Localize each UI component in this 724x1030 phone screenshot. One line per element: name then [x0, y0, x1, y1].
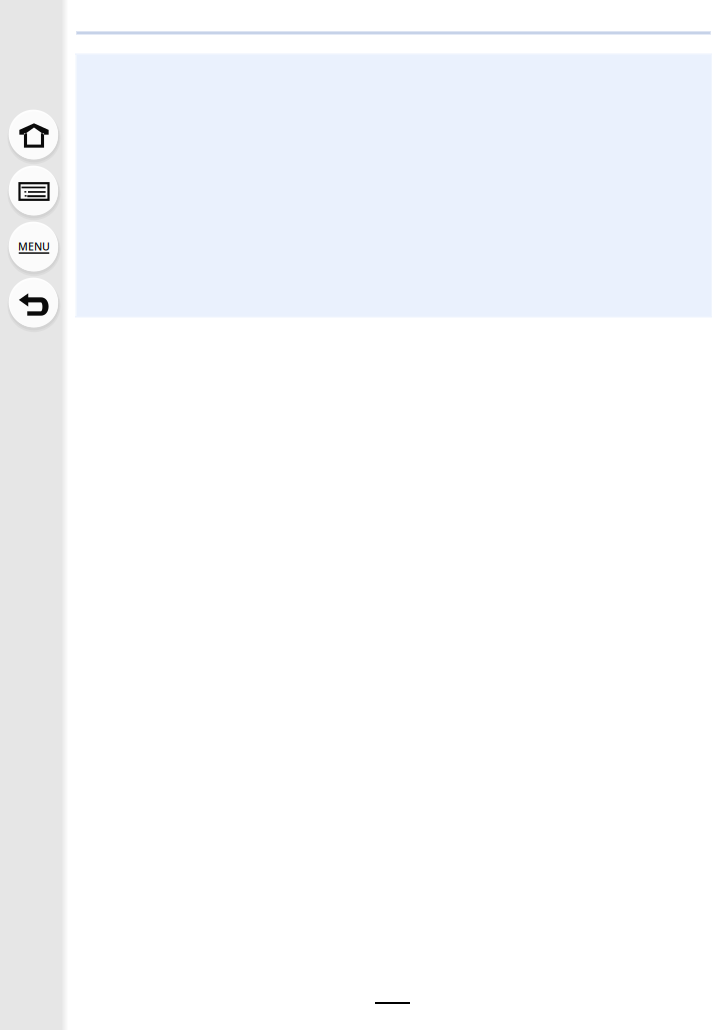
button[interactable]: Home — [5, 106, 63, 164]
button[interactable]: Menu — [5, 218, 63, 276]
button[interactable]: Back — [5, 274, 63, 332]
button[interactable]: Page marker — [369, 992, 416, 1014]
button[interactable]: Display — [5, 162, 63, 220]
staticText: MENU — [18, 239, 50, 253]
